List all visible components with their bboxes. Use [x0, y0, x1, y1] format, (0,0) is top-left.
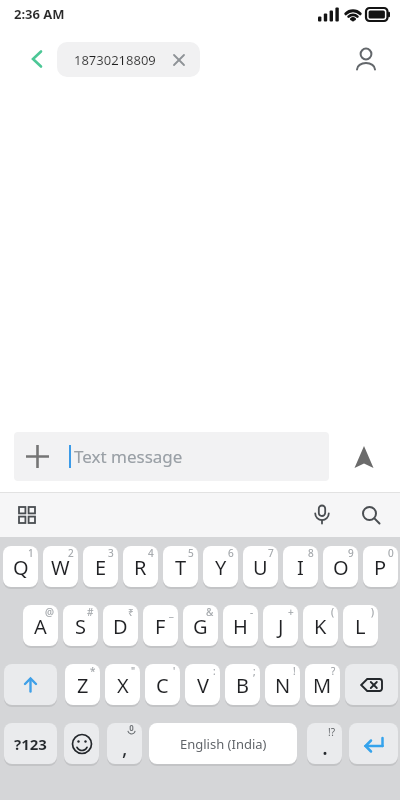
staticText: Text message — [74, 445, 183, 468]
button[interactable]: K — [303, 605, 338, 646]
staticText: H — [233, 613, 248, 640]
button[interactable]: F — [143, 605, 178, 646]
button[interactable] — [4, 664, 57, 705]
button[interactable]: N — [265, 664, 300, 705]
button[interactable]: , — [107, 723, 142, 764]
staticText: . — [322, 731, 328, 761]
button[interactable]: A — [23, 605, 58, 646]
button[interactable]: J — [263, 605, 298, 646]
button[interactable]: T — [163, 546, 198, 587]
staticText: English (India) — [180, 735, 267, 753]
staticText: 1 — [28, 546, 34, 560]
staticText: Z — [77, 672, 89, 699]
staticText: , — [122, 734, 128, 761]
staticText: ?123 — [14, 734, 47, 754]
staticText: B — [236, 672, 249, 699]
button[interactable]: . — [307, 723, 342, 764]
staticText: 5 — [188, 546, 194, 560]
staticText: !? — [328, 725, 336, 739]
staticText: P — [374, 554, 387, 581]
staticText: @ — [45, 605, 54, 619]
button[interactable] — [8, 496, 46, 534]
button[interactable] — [64, 723, 99, 764]
staticText: I — [297, 554, 304, 581]
staticText: : — [213, 664, 216, 678]
staticText: 3 — [108, 546, 114, 560]
staticText: Q — [13, 554, 29, 581]
staticText: M — [313, 672, 332, 699]
staticText: 7 — [268, 546, 274, 560]
staticText: " — [131, 664, 136, 678]
staticText: L — [355, 613, 366, 640]
button[interactable]: I — [283, 546, 318, 587]
staticText: 0 — [388, 546, 394, 560]
button[interactable]: G — [183, 605, 218, 646]
staticText: T — [175, 554, 187, 581]
staticText: ) — [371, 605, 374, 619]
staticText: ₹ — [128, 605, 134, 619]
button[interactable]: Text message — [14, 432, 329, 481]
staticText: 6 — [228, 546, 234, 560]
staticText: 2:36 AM — [14, 5, 65, 23]
button[interactable]: S — [63, 605, 98, 646]
staticText: ' — [173, 664, 176, 678]
button[interactable]: B — [225, 664, 260, 705]
button[interactable]: Y — [203, 546, 238, 587]
button[interactable] — [22, 44, 52, 74]
staticText: Y — [215, 554, 227, 581]
staticText: G — [193, 613, 208, 640]
staticText: ; — [253, 664, 256, 678]
staticText: & — [206, 605, 214, 619]
staticText: U — [253, 554, 268, 581]
staticText: ( — [331, 605, 334, 619]
staticText: W — [51, 554, 70, 581]
button[interactable]: H — [223, 605, 258, 646]
button[interactable]: ?123 — [4, 723, 57, 764]
staticText: _ — [169, 605, 174, 619]
button[interactable] — [303, 496, 341, 534]
button[interactable] — [345, 664, 398, 705]
staticText: N — [275, 672, 291, 699]
staticText: E — [95, 554, 107, 581]
button[interactable]: L — [343, 605, 378, 646]
staticText: ? — [331, 664, 336, 678]
staticText: C — [156, 672, 169, 699]
staticText: 18730218809 — [74, 51, 156, 69]
button[interactable]: E — [83, 546, 118, 587]
staticText: A — [34, 613, 47, 640]
staticText: V — [197, 672, 209, 699]
button[interactable]: P — [363, 546, 398, 587]
staticText: O — [333, 554, 349, 581]
staticText: F — [155, 613, 166, 640]
button[interactable]: D — [103, 605, 138, 646]
button[interactable]: Z — [65, 664, 100, 705]
staticText: # — [87, 605, 94, 619]
button[interactable] — [349, 723, 398, 764]
staticText: D — [113, 613, 128, 640]
staticText: + — [288, 605, 294, 619]
button[interactable]: C — [145, 664, 180, 705]
button[interactable] — [340, 437, 388, 477]
staticText: ! — [293, 664, 296, 678]
button[interactable]: U — [243, 546, 278, 587]
button[interactable]: English (India) — [149, 723, 297, 764]
staticText: - — [250, 605, 254, 619]
staticText: 4 — [148, 546, 154, 560]
button[interactable]: W — [43, 546, 78, 587]
staticText: 8 — [308, 546, 314, 560]
button[interactable]: R — [123, 546, 158, 587]
button[interactable]: O — [323, 546, 358, 587]
button[interactable] — [352, 496, 390, 534]
button[interactable] — [14, 432, 60, 481]
button[interactable]: X — [105, 664, 140, 705]
button[interactable]: M — [305, 664, 340, 705]
button[interactable] — [350, 42, 382, 74]
button[interactable]: Q — [3, 546, 38, 587]
staticText: K — [314, 613, 327, 640]
staticText: X — [117, 672, 129, 699]
button[interactable]: 18730218809 — [57, 42, 200, 77]
staticText: J — [278, 613, 284, 640]
staticText: R — [134, 554, 147, 581]
button[interactable]: V — [185, 664, 220, 705]
staticText: 2 — [68, 546, 74, 560]
